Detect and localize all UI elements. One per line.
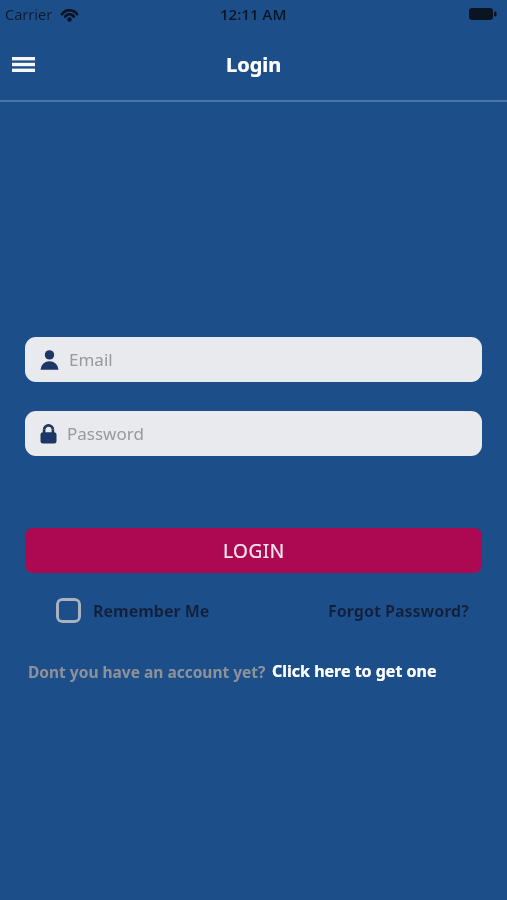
- staticText: Carrier: [5, 4, 53, 24]
- button[interactable]: Click here to get one: [272, 660, 437, 682]
- button[interactable]: LOGIN: [25, 528, 482, 573]
- staticText: LOGIN: [223, 538, 285, 564]
- staticText: Email: [69, 348, 113, 371]
- button[interactable]: Email: [25, 337, 482, 382]
- staticText: Remember Me: [93, 600, 210, 622]
- staticText: Password: [67, 422, 144, 445]
- button[interactable]: Password: [25, 411, 482, 456]
- staticText: Dont you have an account yet?: [28, 661, 266, 682]
- button[interactable]: [5, 46, 41, 82]
- button[interactable]: Forgot Password?: [328, 600, 469, 622]
- staticText: 12:11 AM: [220, 4, 287, 24]
- button[interactable]: [56, 598, 81, 623]
- staticText: Login: [226, 51, 282, 78]
